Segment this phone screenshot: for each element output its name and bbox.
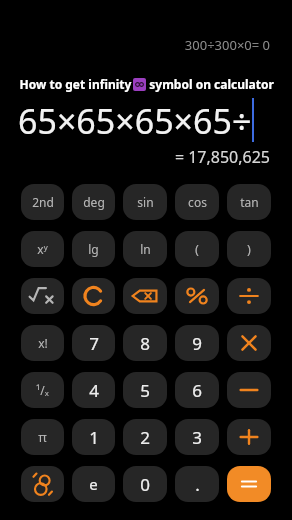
- button[interactable]: 8: [123, 325, 167, 361]
- button[interactable]: Multiply: [227, 325, 271, 361]
- staticText: ln: [140, 241, 151, 257]
- staticText: ): [247, 240, 251, 258]
- button[interactable]: 9: [175, 325, 219, 361]
- staticText: 0: [140, 473, 150, 496]
- staticText: 5: [140, 379, 150, 402]
- staticText: xʸ: [37, 241, 48, 257]
- staticText: x!: [38, 335, 48, 351]
- staticText: 8: [140, 332, 150, 355]
- button[interactable]: 6: [175, 372, 219, 408]
- staticText: lg: [88, 241, 99, 257]
- button[interactable]: 2: [123, 419, 167, 455]
- staticText: 9: [192, 332, 202, 355]
- staticText: cos: [188, 194, 207, 210]
- button[interactable]: ): [227, 231, 271, 267]
- button[interactable]: Divide: [227, 278, 271, 314]
- staticText: How to get infinity: [18, 76, 133, 92]
- button[interactable]: xʸ: [21, 231, 64, 267]
- staticText: deg: [83, 194, 105, 210]
- button[interactable]: lg: [72, 231, 115, 267]
- button[interactable]: π: [21, 419, 64, 455]
- staticText: (: [195, 240, 199, 258]
- button[interactable]: 1: [72, 419, 115, 455]
- staticText: e: [89, 474, 98, 494]
- staticText: sin: [137, 194, 154, 210]
- staticText: 2nd: [32, 194, 54, 210]
- staticText: 65×65×65×65÷: [18, 98, 252, 144]
- button[interactable]: 2nd: [21, 184, 64, 220]
- staticText: 6: [192, 379, 202, 402]
- button[interactable]: ln: [123, 231, 167, 267]
- button[interactable]: deg: [72, 184, 115, 220]
- staticText: 2: [140, 426, 150, 449]
- staticText: 1: [89, 426, 99, 449]
- staticText: π: [38, 428, 47, 446]
- button[interactable]: Minus: [227, 372, 271, 408]
- button[interactable]: .: [175, 466, 219, 502]
- button[interactable]: sin: [123, 184, 167, 220]
- staticText: 7: [89, 332, 99, 355]
- staticText: = 17,850,625: [174, 146, 270, 168]
- staticText: symbol on calculator: [146, 76, 274, 92]
- staticText: 4: [89, 379, 99, 402]
- button[interactable]: tan: [227, 184, 271, 220]
- button[interactable]: 4: [72, 372, 115, 408]
- staticText: tan: [240, 194, 259, 210]
- staticText: 300÷300×0= 0: [184, 36, 270, 54]
- button[interactable]: Plus: [227, 419, 271, 455]
- button[interactable]: ¹/ₓ: [21, 372, 64, 408]
- button[interactable]: Backspace: [123, 278, 167, 314]
- button[interactable]: e: [72, 466, 115, 502]
- staticText: .: [195, 473, 200, 496]
- button[interactable]: Scientific mode: [21, 466, 64, 502]
- staticText: 3: [192, 426, 202, 449]
- button[interactable]: Equals: [227, 466, 271, 502]
- button[interactable]: x!: [21, 325, 64, 361]
- button[interactable]: cos: [175, 184, 219, 220]
- button[interactable]: (: [175, 231, 219, 267]
- button[interactable]: 3: [175, 419, 219, 455]
- button[interactable]: Percent: [175, 278, 219, 314]
- button[interactable]: Square root: [21, 278, 64, 314]
- button[interactable]: 5: [123, 372, 167, 408]
- button[interactable]: Clear: [72, 278, 115, 314]
- button[interactable]: 7: [72, 325, 115, 361]
- staticText: ¹/ₓ: [36, 382, 49, 398]
- button[interactable]: 0: [123, 466, 167, 502]
